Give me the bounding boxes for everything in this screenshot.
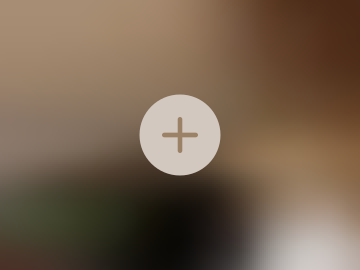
button[interactable]: Add <box>139 94 220 175</box>
